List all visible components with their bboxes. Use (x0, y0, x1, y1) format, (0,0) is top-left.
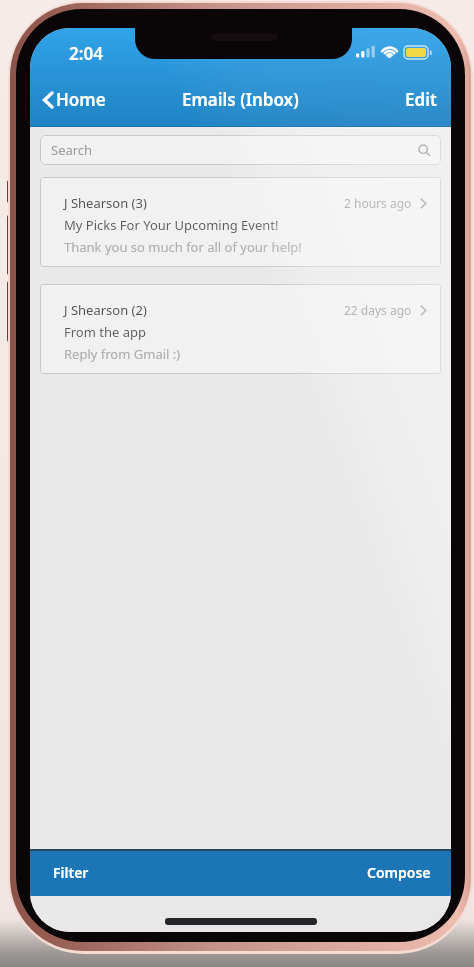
button[interactable]: Filter (53, 863, 89, 882)
staticText: Search (51, 141, 93, 159)
button[interactable]: Compose (367, 863, 431, 882)
staticText: Reply from Gmail :) (64, 345, 181, 363)
staticText: My Picks For Your Upcoming Event! (64, 216, 279, 234)
staticText: Home (56, 88, 106, 111)
button[interactable]: Home (40, 88, 106, 111)
staticText: Filter (53, 863, 89, 882)
staticText: J Shearson (2) (64, 301, 147, 319)
staticText: Compose (367, 863, 431, 882)
staticText: From the app (64, 323, 146, 341)
staticText: 2:04 (69, 42, 103, 65)
button[interactable]: Edit (405, 88, 437, 111)
staticText: Emails (Inbox) (182, 88, 299, 111)
staticText: 22 days ago (344, 302, 412, 318)
staticText: J Shearson (3) (64, 194, 147, 212)
button[interactable]: J Shearson (3) (40, 177, 441, 267)
staticText: Edit (405, 88, 437, 111)
staticText: Thank you so much for all of your help! (64, 238, 302, 256)
button[interactable]: J Shearson (2) (40, 284, 441, 374)
staticText: 2 hours ago (344, 195, 412, 211)
button[interactable]: Search (40, 135, 441, 165)
